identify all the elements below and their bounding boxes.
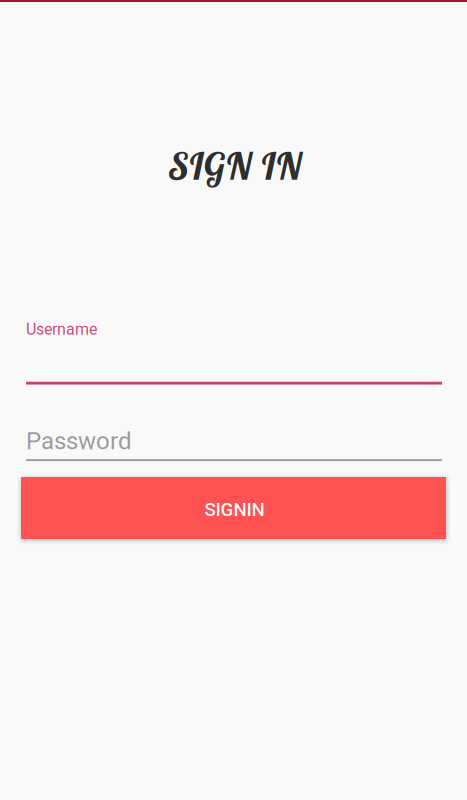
button[interactable]: Username [26,320,442,384]
staticText: Username [26,320,97,339]
button[interactable]: Password [26,427,442,461]
button[interactable]: SIGNIN [21,477,446,539]
staticText: Password [26,427,132,455]
staticText: SIGN IN [169,143,302,189]
staticText: SIGNIN [204,499,264,520]
